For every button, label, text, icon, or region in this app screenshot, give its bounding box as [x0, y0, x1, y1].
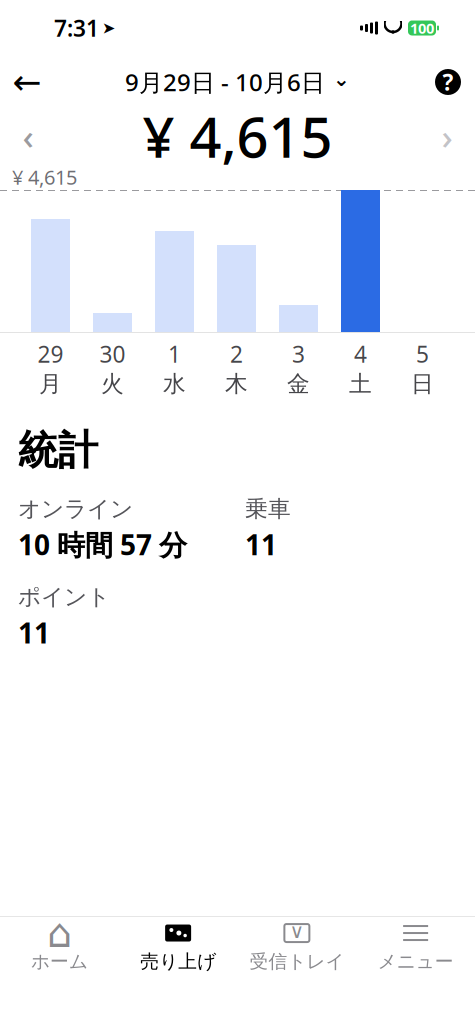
staticText: 土: [349, 370, 372, 398]
staticText: 売り上げ総額: [18, 890, 156, 917]
staticText: 統計: [18, 426, 98, 475]
staticText: 29: [37, 339, 63, 369]
staticText: 乗車: [245, 495, 291, 523]
button[interactable]: Previous week: [0, 110, 56, 162]
staticText: ¥ 4,615: [380, 889, 457, 919]
staticText: メニュー: [378, 950, 454, 973]
button[interactable]: メニュー: [356, 917, 475, 977]
staticText: 1: [168, 339, 181, 369]
staticText: 日: [411, 370, 434, 398]
staticText: ⌂: [47, 910, 72, 956]
staticText: 月: [39, 370, 62, 398]
staticText: 30: [99, 339, 125, 369]
staticText: 売り上げ: [140, 950, 216, 973]
staticText: 金: [287, 370, 310, 398]
button[interactable]: 売り上げ状況を確認する: [20, 945, 455, 1024]
button[interactable]: ∨: [237, 917, 356, 977]
staticText: 9月29日 - 10月6日: [125, 66, 325, 98]
staticText: ∨: [289, 920, 304, 942]
staticText: 100: [410, 18, 434, 38]
button[interactable]: 売り上げ: [119, 917, 238, 977]
staticText: ?: [442, 67, 453, 97]
staticText: 10 時間 57 分: [18, 526, 187, 563]
staticText: 11: [245, 526, 277, 563]
button[interactable]: Help: [421, 58, 475, 106]
staticText: 火: [101, 370, 124, 398]
staticText: 木: [225, 370, 248, 398]
staticText: 7:31: [54, 13, 99, 43]
button[interactable]: Back: [0, 58, 54, 106]
staticText: ‹: [22, 113, 33, 159]
button[interactable]: Next week: [419, 110, 475, 162]
button[interactable]: 9月29日 - 10月6日: [125, 58, 350, 106]
staticText: 5: [416, 339, 429, 369]
staticText: オンライン: [18, 495, 133, 523]
staticText: ホーム: [31, 950, 88, 973]
staticText: ›: [441, 113, 452, 159]
staticText: ¥ 4,615: [12, 164, 77, 190]
staticText: 水: [163, 370, 186, 398]
staticText: 4: [354, 339, 367, 369]
staticText: ←: [12, 62, 41, 102]
staticText: 3: [292, 339, 305, 369]
staticText: ➤: [102, 19, 115, 37]
button[interactable]: ⌂: [0, 917, 119, 977]
staticText: ⌄: [333, 68, 350, 90]
staticText: 受信トレイ: [249, 950, 344, 973]
staticText: 11: [18, 614, 50, 651]
staticText: ¥ 4,615: [142, 99, 332, 173]
staticText: ポイント: [18, 583, 110, 611]
staticText: 2: [230, 339, 243, 369]
